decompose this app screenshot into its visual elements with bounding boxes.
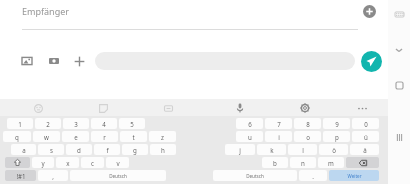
button[interactable]: p bbox=[323, 131, 350, 142]
button[interactable]: b bbox=[262, 157, 288, 168]
button[interactable]: 8 bbox=[294, 118, 321, 129]
button[interactable]: q bbox=[3, 131, 31, 142]
staticText: t bbox=[132, 133, 135, 141]
button[interactable]: r bbox=[91, 131, 118, 142]
button[interactable]: y bbox=[32, 157, 54, 168]
staticText: ü bbox=[364, 133, 368, 141]
staticText: Empfänger bbox=[22, 5, 69, 17]
button[interactable]: Tastatur bbox=[391, 6, 407, 22]
staticText: !#1 bbox=[16, 172, 26, 180]
button[interactable]: Galerie bbox=[18, 52, 36, 70]
button[interactable]: Deutsch bbox=[70, 170, 166, 181]
staticText: Weiter bbox=[347, 173, 362, 179]
staticText: . bbox=[312, 172, 314, 180]
button[interactable]: Weitere Optionen bbox=[354, 100, 370, 116]
button[interactable]: w bbox=[33, 131, 60, 142]
staticText: , bbox=[52, 172, 54, 180]
button[interactable]: h bbox=[150, 144, 176, 155]
button[interactable]: Sticker bbox=[95, 100, 111, 116]
button[interactable]: s bbox=[38, 144, 64, 155]
button[interactable]: n bbox=[290, 157, 316, 168]
staticText: e bbox=[74, 133, 78, 141]
button[interactable]: Spracheingabe bbox=[232, 100, 248, 116]
staticText: r bbox=[103, 133, 106, 141]
button[interactable]: 7 bbox=[265, 118, 292, 129]
button[interactable]: 2 bbox=[35, 118, 61, 129]
button[interactable]: Kontakt hinzufügen bbox=[358, 0, 380, 22]
button[interactable]: ü bbox=[352, 131, 379, 142]
button[interactable]: Einstellungen bbox=[297, 100, 313, 116]
staticText: i bbox=[278, 133, 280, 141]
button[interactable]: 6 bbox=[236, 118, 263, 129]
staticText: q bbox=[15, 133, 19, 141]
button[interactable]: Übersicht bbox=[391, 129, 407, 145]
button[interactable]: Umschalt bbox=[5, 157, 30, 168]
button[interactable]: Deutsch bbox=[213, 170, 297, 181]
button[interactable]: . bbox=[299, 170, 327, 181]
staticText: f bbox=[106, 146, 109, 154]
staticText: b bbox=[273, 159, 277, 167]
button[interactable]: 5 bbox=[119, 118, 145, 129]
button[interactable]: t bbox=[120, 131, 147, 142]
button[interactable]: v bbox=[106, 157, 129, 168]
button[interactable]: GIF bbox=[160, 100, 176, 116]
button[interactable]: f bbox=[94, 144, 120, 155]
button[interactable]: !#1 bbox=[5, 170, 36, 181]
staticText: c bbox=[91, 159, 94, 167]
button[interactable]: , bbox=[38, 170, 68, 181]
button[interactable]: k bbox=[257, 144, 286, 155]
staticText: k bbox=[270, 146, 274, 154]
staticText: 8 bbox=[306, 120, 310, 128]
staticText: ä bbox=[363, 146, 367, 154]
staticText: Deutsch bbox=[109, 173, 127, 179]
staticText: 5 bbox=[130, 120, 134, 128]
button[interactable]: 1 bbox=[7, 118, 33, 129]
staticText: w bbox=[44, 133, 49, 141]
button[interactable]: d bbox=[66, 144, 92, 155]
button[interactable]: 3 bbox=[63, 118, 89, 129]
staticText: z bbox=[161, 133, 164, 141]
button[interactable]: Emoji bbox=[30, 100, 46, 116]
staticText: 6 bbox=[248, 120, 252, 128]
button[interactable]: Anhang hinzufügen bbox=[70, 52, 88, 70]
button[interactable]: ö bbox=[319, 144, 348, 155]
button[interactable]: a bbox=[11, 144, 36, 155]
button[interactable]: Senden bbox=[361, 51, 382, 72]
button[interactable]: Weiter bbox=[329, 170, 379, 181]
button[interactable]: Zurück bbox=[391, 42, 407, 58]
button[interactable]: Startbildschirm bbox=[391, 77, 407, 93]
button[interactable]: g bbox=[122, 144, 148, 155]
staticText: 7 bbox=[277, 120, 281, 128]
staticText: v bbox=[116, 159, 120, 167]
button[interactable]: ä bbox=[350, 144, 379, 155]
staticText: s bbox=[50, 146, 53, 154]
button[interactable]: e bbox=[62, 131, 89, 142]
button[interactable]: m bbox=[318, 157, 344, 168]
button[interactable]: Löschen bbox=[346, 157, 379, 168]
staticText: n bbox=[301, 159, 305, 167]
staticText: d bbox=[77, 146, 81, 154]
button[interactable]: z bbox=[149, 131, 176, 142]
button[interactable]: 0 bbox=[352, 118, 379, 129]
staticText: 4 bbox=[102, 120, 106, 128]
button[interactable]: 9 bbox=[323, 118, 350, 129]
button[interactable]: u bbox=[236, 131, 263, 142]
staticText: j bbox=[239, 146, 241, 154]
button[interactable]: 4 bbox=[91, 118, 117, 129]
button[interactable]: j bbox=[225, 144, 255, 155]
button[interactable]: i bbox=[265, 131, 292, 142]
staticText: Deutsch bbox=[246, 173, 264, 179]
staticText: 1 bbox=[18, 120, 22, 128]
staticText: 9 bbox=[335, 120, 339, 128]
button[interactable]: l bbox=[288, 144, 317, 155]
staticText: 0 bbox=[364, 120, 368, 128]
button[interactable]: Kamera bbox=[45, 52, 63, 70]
button[interactable]: x bbox=[56, 157, 79, 168]
button[interactable]: o bbox=[294, 131, 321, 142]
staticText: y bbox=[41, 159, 45, 167]
button[interactable]: c bbox=[81, 157, 104, 168]
staticText: o bbox=[306, 133, 310, 141]
staticText: a bbox=[22, 146, 26, 154]
staticText: u bbox=[248, 133, 252, 141]
